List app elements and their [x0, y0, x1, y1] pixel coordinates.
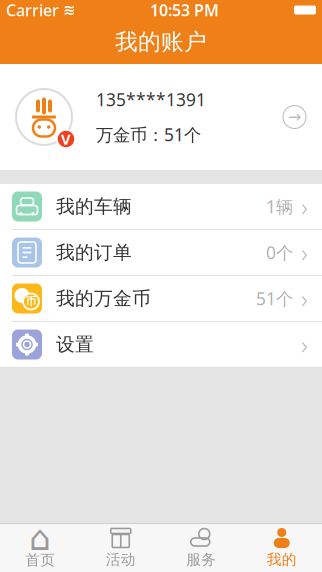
- staticText: ›: [301, 190, 308, 223]
- staticText: 我的: [267, 550, 297, 568]
- button[interactable]: 我的订单: [0, 230, 322, 276]
- button[interactable]: ⌂: [0, 524, 80, 572]
- button[interactable]: 设置: [0, 322, 322, 368]
- staticText: 1辆: [266, 195, 293, 218]
- button[interactable]: V: [0, 64, 322, 170]
- staticText: ›: [301, 236, 308, 269]
- staticText: 0个: [266, 241, 293, 264]
- button[interactable]: 活动: [80, 524, 161, 572]
- staticText: 活动: [106, 550, 136, 568]
- staticText: ›: [301, 328, 308, 361]
- staticText: Carrier: [6, 0, 59, 21]
- button[interactable]: 我的车辆: [0, 184, 322, 230]
- staticText: V: [61, 129, 71, 149]
- staticText: 我的账户: [115, 28, 207, 56]
- staticText: ›: [301, 282, 308, 315]
- staticText: 10:53 PM: [150, 0, 219, 21]
- staticText: 币: [25, 295, 36, 308]
- staticText: ⌂: [29, 518, 51, 558]
- staticText: 我的万金币: [56, 287, 151, 310]
- button[interactable]: 币: [0, 276, 322, 322]
- staticText: 服务: [186, 550, 216, 568]
- staticText: ≋: [63, 2, 75, 18]
- staticText: 我的订单: [56, 241, 132, 264]
- button[interactable]: 服务: [161, 524, 241, 572]
- staticText: 设置: [56, 333, 94, 356]
- staticText: 135****1391: [96, 88, 206, 111]
- staticText: 万金币：51个: [96, 123, 201, 146]
- button[interactable]: 我的: [241, 524, 322, 572]
- staticText: 首页: [25, 551, 55, 569]
- staticText: →: [288, 108, 301, 126]
- staticText: 51个: [256, 287, 293, 310]
- staticText: 我的车辆: [56, 195, 132, 218]
